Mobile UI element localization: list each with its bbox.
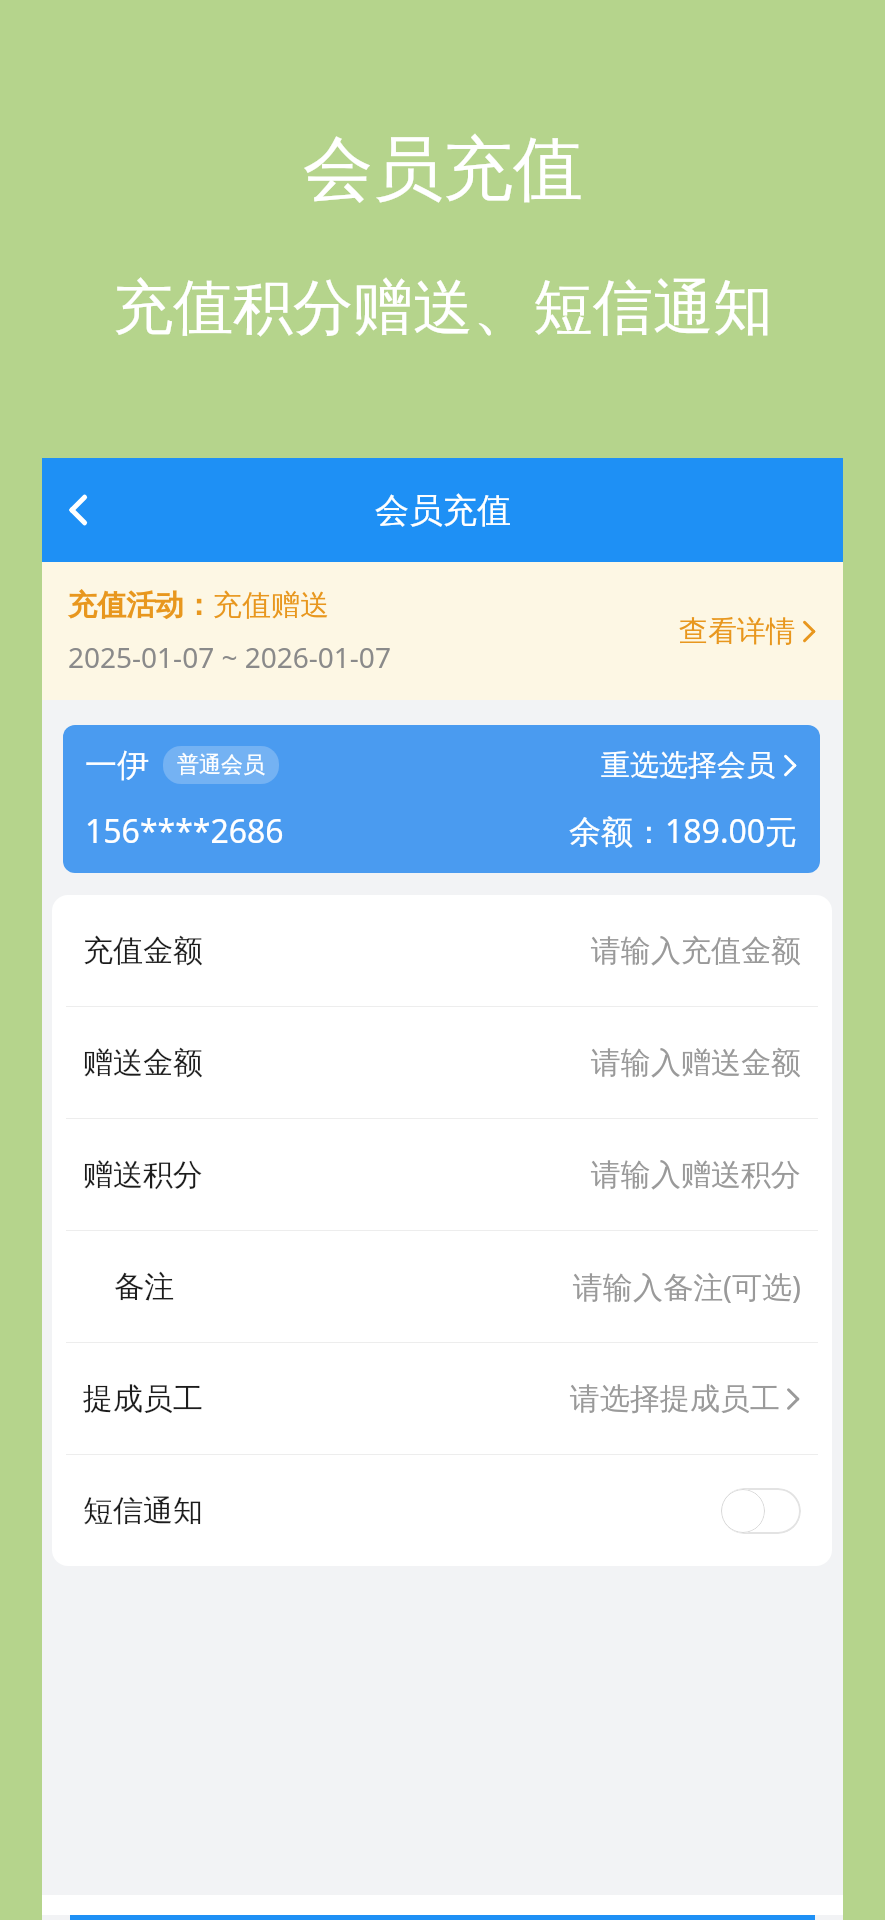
staticText: 短信通知 (83, 1492, 203, 1530)
button[interactable]: 赠送积分 (52, 1119, 832, 1230)
button[interactable]: 短信通知 toggle (721, 1488, 801, 1534)
staticText: 赠送金额 (83, 1044, 203, 1082)
button[interactable]: 提成员工 (52, 1343, 832, 1454)
staticText: 备注 (114, 1268, 174, 1306)
staticText: 提成员工 (83, 1380, 203, 1418)
staticText: 查看详情 (679, 613, 795, 650)
staticText: 请选择提成员工 (570, 1380, 780, 1418)
staticText: 普通会员 (177, 751, 265, 779)
button[interactable]: 充值金额 (52, 895, 832, 1006)
staticText: 赠送积分 (83, 1156, 203, 1194)
staticText: 156****2686 (85, 809, 284, 853)
staticText: 充值金额 (83, 932, 203, 970)
button[interactable]: 赠送金额 (52, 1007, 832, 1118)
staticText: 2025-01-07 ~ 2026-01-07 (68, 638, 391, 676)
staticText: 请输入赠送积分 (591, 1156, 801, 1194)
button[interactable]: 充值活动：充值赠送 (42, 562, 843, 700)
staticText: 充值活动：充值赠送 (68, 587, 329, 624)
staticText: 请输入充值金额 (591, 932, 801, 970)
staticText: 余额：189.00元 (569, 809, 798, 853)
staticText: 会员充值 (375, 489, 511, 532)
button[interactable]: Back (42, 474, 114, 546)
button[interactable]: 一伊 (63, 725, 820, 873)
staticText: 会员充值 (303, 126, 583, 214)
staticText: 一伊 (85, 745, 149, 785)
button[interactable]: 备注 (52, 1231, 832, 1342)
staticText: 充值积分赠送、短信通知 (113, 270, 773, 346)
staticText: 请输入赠送金额 (591, 1044, 801, 1082)
button[interactable]: 短信通知 (52, 1455, 832, 1566)
staticText: 请输入备注(可选) (573, 1266, 801, 1307)
staticText: 重选选择会员 (601, 747, 775, 784)
